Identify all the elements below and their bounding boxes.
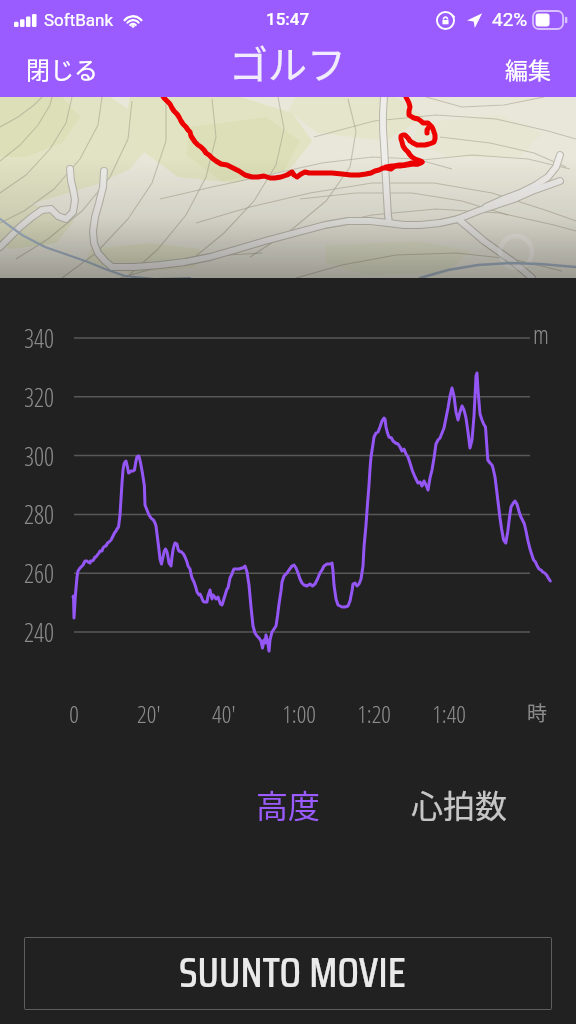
staticText: 1:20 — [357, 697, 391, 730]
staticText: 0 — [69, 697, 79, 730]
staticText: 240 — [24, 615, 54, 649]
staticText: 1:40 — [432, 697, 466, 730]
button[interactable]: 心拍数 — [399, 775, 520, 833]
staticText: 260 — [24, 556, 54, 590]
button[interactable]: 編集 — [489, 42, 576, 95]
staticText: 心拍数 — [411, 781, 508, 827]
staticText: 編集 — [505, 52, 551, 85]
button[interactable]: SUUNTO MOVIE — [24, 937, 552, 1010]
staticText: 閉じる — [26, 51, 98, 86]
staticText: SoftBank — [44, 10, 114, 30]
staticText: 40' — [212, 697, 236, 730]
staticText: 1:00 — [282, 697, 316, 730]
staticText: 320 — [24, 380, 54, 414]
button[interactable]: 閉じる — [0, 41, 114, 96]
staticText: SUUNTO MOVIE — [179, 939, 406, 1005]
staticText: 高度 — [256, 781, 321, 827]
staticText: 340 — [24, 321, 54, 355]
staticText: 時 — [527, 698, 547, 727]
staticText: 42% — [492, 8, 528, 30]
button[interactable]: 高度 — [244, 775, 333, 833]
staticText: ゴルフ — [229, 34, 347, 90]
staticText: 15:47 — [266, 9, 310, 29]
staticText: 300 — [24, 439, 54, 473]
staticText: 20' — [137, 697, 161, 730]
staticText: 280 — [24, 497, 54, 531]
staticText: m — [533, 317, 549, 351]
